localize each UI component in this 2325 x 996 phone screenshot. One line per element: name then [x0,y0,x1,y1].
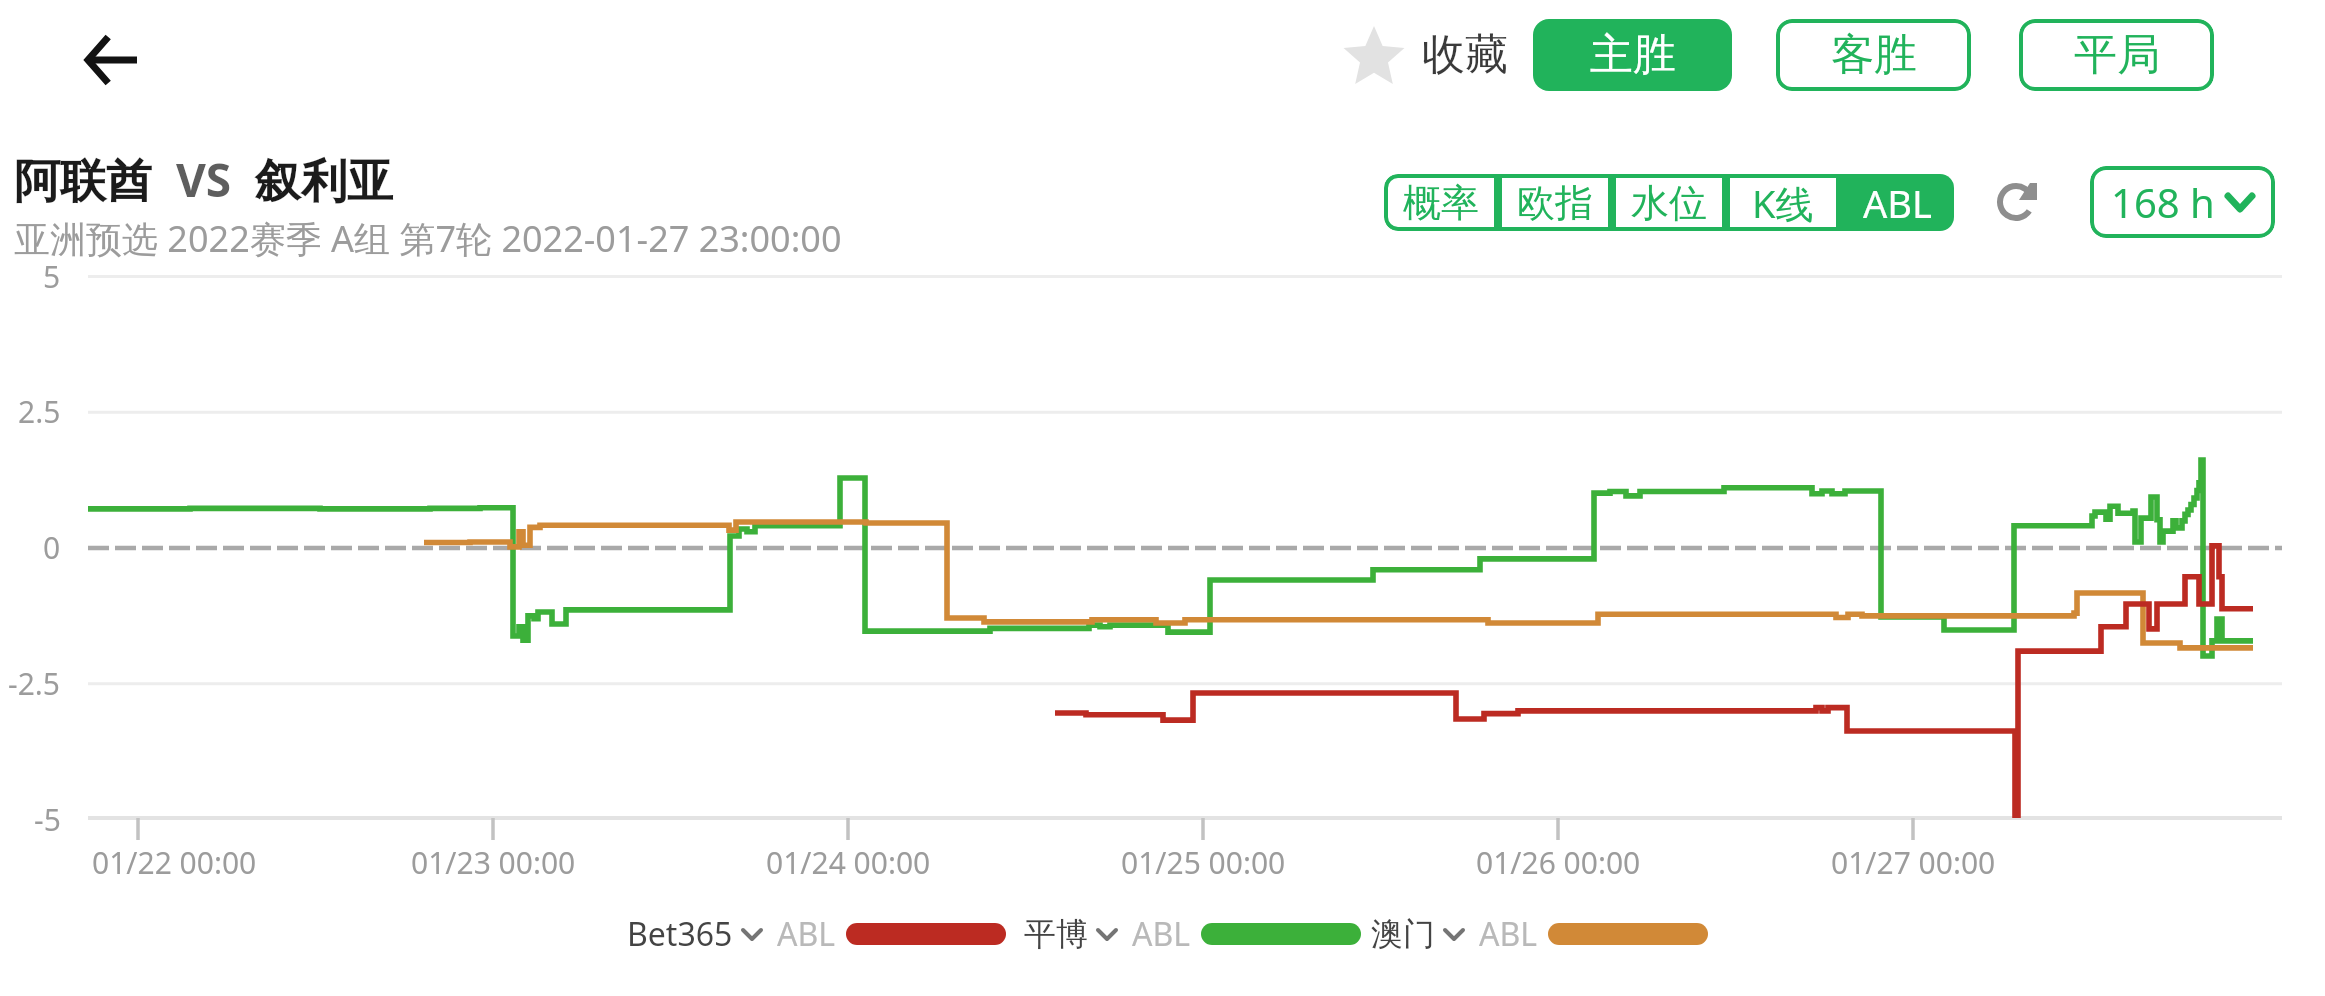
staticText: K线 [1752,177,1814,229]
staticText: 收藏 [1422,28,1508,82]
staticText: -5 [34,799,61,840]
button[interactable]: 收藏 [1342,16,1508,94]
staticText: 01/24 00:00 [766,842,931,883]
staticText: 亚洲预选 2022赛季 A组 第7轮 2022-01-27 23:00:00 [14,214,842,263]
button[interactable]: 概率 [1384,174,1498,231]
staticText: 平博 [1024,914,1088,954]
button[interactable]: 168 h [2090,166,2275,238]
button[interactable]: 客胜 [1776,19,1971,91]
staticText: ABL [1132,912,1191,956]
button[interactable]: Refresh [1978,162,2058,242]
button[interactable]: 主胜 [1533,19,1732,91]
staticText: Bet365 [627,912,733,956]
staticText: 主胜 [1590,28,1676,82]
staticText: 概率 [1403,179,1479,227]
staticText: 平局 [2074,28,2160,82]
button[interactable]: K线 [1726,174,1840,231]
button[interactable]: ABL [1840,174,1954,231]
staticText: 01/23 00:00 [411,842,576,883]
staticText: 澳门 [1371,914,1435,954]
button[interactable]: Back [56,12,166,108]
staticText: ABL [777,912,836,956]
staticText: 阿联酋 VS 叙利亚 [14,148,394,211]
staticText: 水位 [1631,179,1707,227]
staticText: 01/25 00:00 [1121,842,1286,883]
staticText: 01/22 00:00 [92,842,257,883]
staticText: 01/26 00:00 [1476,842,1641,883]
button[interactable]: Bet365 [627,912,1006,956]
button[interactable]: 澳门 [1371,912,1708,956]
staticText: -2.5 [8,663,61,704]
button[interactable]: 欧指 [1498,174,1612,231]
staticText: 客胜 [1831,28,1917,82]
staticText: 欧指 [1517,179,1593,227]
staticText: ABL [1479,912,1538,956]
button[interactable]: 平局 [2019,19,2214,91]
staticText: 2.5 [18,391,61,432]
staticText: 01/27 00:00 [1831,842,1996,883]
staticText: 0 [43,527,61,568]
staticText: 168 h [2111,175,2215,229]
staticText: 5 [43,256,61,297]
button[interactable]: 平博 [1024,912,1361,956]
staticText: ABL [1863,177,1932,229]
button[interactable]: 水位 [1612,174,1726,231]
